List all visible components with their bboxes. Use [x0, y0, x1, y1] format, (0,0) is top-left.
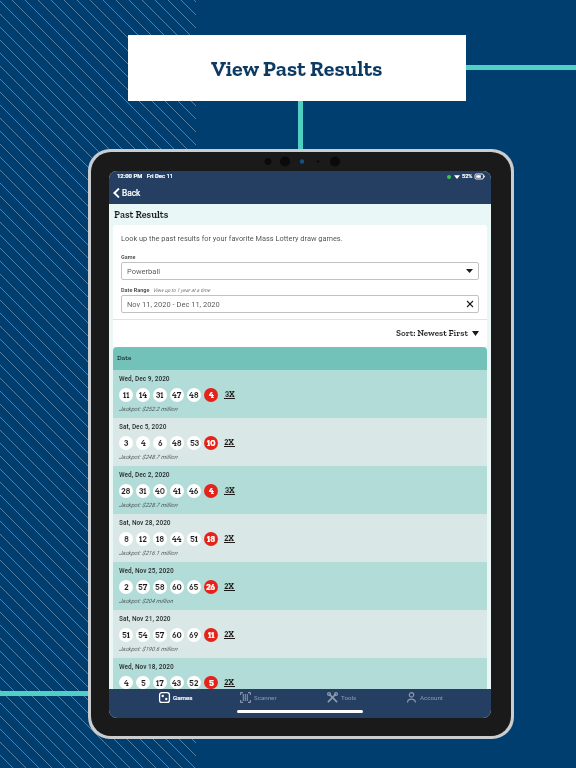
staticText: 46	[189, 486, 199, 496]
button[interactable]: Account	[383, 689, 466, 706]
staticText: 11	[208, 630, 215, 640]
staticText: 11	[123, 390, 130, 400]
button[interactable]: Tools	[300, 689, 383, 706]
staticText: 31	[139, 486, 147, 496]
staticText: Wed, Dec 9, 2020	[119, 375, 170, 383]
staticText: 69	[189, 630, 199, 640]
staticText: Look up the past results for your favori…	[121, 234, 343, 243]
staticText: 18	[156, 534, 164, 544]
button[interactable]: Nov 11, 2020 - Dec 11, 2020	[121, 295, 479, 313]
staticText: View Past Results	[211, 55, 383, 81]
staticText: 54	[138, 630, 148, 640]
staticText: 53	[190, 438, 199, 448]
staticText: 4	[209, 486, 214, 496]
staticText: 5	[209, 678, 214, 688]
button[interactable]: Back	[109, 185, 147, 201]
button[interactable]: Powerball	[121, 262, 479, 280]
staticText: 6	[158, 438, 163, 448]
staticText: Wed, Dec 2, 2020	[119, 471, 170, 479]
staticText: 4	[141, 438, 146, 448]
staticText: 4	[209, 390, 214, 400]
staticText: 48	[189, 390, 199, 400]
staticText: Games	[173, 694, 193, 701]
staticText: Sat, Nov 28, 2020	[119, 519, 171, 527]
button[interactable]: Sat, Dec 5, 2020	[113, 418, 487, 466]
staticText: Wed, Nov 18, 2020	[119, 663, 174, 671]
button[interactable]: Sort: Newest First	[388, 325, 487, 342]
staticText: 47	[172, 390, 182, 400]
staticText: 2X	[224, 582, 235, 591]
staticText: 17	[156, 678, 164, 688]
staticText: 2	[124, 582, 129, 592]
staticText: 51	[122, 630, 130, 640]
staticText: Powerball	[127, 267, 161, 276]
staticText: 2X	[224, 678, 235, 687]
staticText: 44	[172, 534, 182, 544]
staticText: Jackpot: $228.7 million	[119, 502, 178, 509]
staticText: Tools	[341, 694, 357, 701]
staticText: 48	[172, 438, 182, 448]
button[interactable]: Wed, Nov 18, 2020	[113, 658, 487, 689]
button[interactable]: Wed, Nov 25, 2020	[113, 562, 487, 610]
staticText: 10	[207, 438, 216, 448]
staticText: Game	[121, 254, 136, 260]
staticText: 65	[189, 582, 199, 592]
staticText: 57	[138, 582, 148, 592]
staticText: 18	[207, 534, 215, 544]
staticText: 52	[189, 678, 199, 688]
staticText: Sort: Newest First	[396, 328, 468, 339]
staticText: 14	[139, 390, 147, 400]
staticText: Jackpot: $248.7 million	[119, 454, 178, 461]
staticText: Sat, Nov 21, 2020	[119, 615, 171, 623]
staticText: Date	[117, 354, 132, 362]
staticText: 60	[172, 582, 182, 592]
staticText: Past Results	[114, 209, 169, 221]
staticText: 2X	[224, 630, 235, 639]
button[interactable]: Sat, Nov 21, 2020	[113, 610, 487, 658]
staticText: Sat, Dec 5, 2020	[119, 423, 167, 431]
staticText: 8	[124, 534, 129, 544]
staticText: 43	[172, 678, 182, 688]
button[interactable]: Wed, Dec 9, 2020	[113, 370, 487, 418]
staticText: 3	[124, 438, 129, 448]
other: Back	[113, 188, 119, 198]
button[interactable]: Games	[134, 689, 217, 706]
staticText: 52%	[462, 173, 473, 180]
staticText: Account	[420, 694, 443, 701]
staticText: Jackpot: $216.1 million	[119, 550, 178, 557]
staticText: Jackpot: $204 million	[119, 598, 173, 605]
staticText: 5	[141, 678, 146, 688]
staticText: 57	[155, 630, 165, 640]
staticText: Back	[122, 188, 141, 198]
staticText: View up to 1 year at a time	[153, 287, 211, 293]
staticText: 51	[190, 534, 198, 544]
staticText: Date Range	[121, 287, 150, 293]
staticText: Jackpot: $190.6 million	[119, 646, 178, 653]
staticText: 40	[155, 486, 165, 496]
staticText: 41	[173, 486, 181, 496]
staticText: 12:00 PM Fri Dec 11	[117, 173, 174, 180]
staticText: 2X	[224, 438, 235, 447]
staticText: 3X	[225, 486, 235, 495]
staticText: 58	[155, 582, 165, 592]
other: Clear date range	[467, 301, 473, 307]
button[interactable]: Wed, Dec 2, 2020	[113, 466, 487, 514]
staticText: 4	[124, 678, 129, 688]
staticText: Nov 11, 2020 - Dec 11, 2020	[127, 300, 220, 309]
button[interactable]: Scanner	[217, 689, 300, 706]
staticText: 26	[206, 582, 216, 592]
staticText: 31	[156, 390, 164, 400]
staticText: 2X	[224, 534, 235, 543]
staticText: 3X	[225, 390, 235, 399]
staticText: 12	[139, 534, 147, 544]
staticText: Wed, Nov 25, 2020	[119, 567, 174, 575]
staticText: 28	[121, 486, 131, 496]
button[interactable]: Sat, Nov 28, 2020	[113, 514, 487, 562]
staticText: Scanner	[254, 694, 277, 701]
staticText: 60	[172, 630, 182, 640]
staticText: Jackpot: $252.2 million	[119, 406, 178, 413]
